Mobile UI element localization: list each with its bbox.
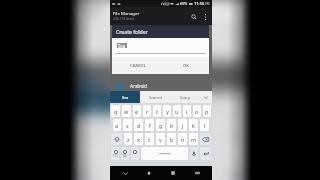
staticText: Scary <box>180 95 191 100</box>
button[interactable]: t <box>153 105 161 117</box>
button[interactable]: q <box>111 105 120 117</box>
button[interactable]: Android <box>70 74 251 90</box>
button[interactable]: p <box>203 105 211 117</box>
button[interactable]: Comma <box>131 147 139 160</box>
button[interactable]: More suggestions <box>231 92 251 113</box>
button[interactable]: j <box>178 119 187 131</box>
button[interactable]: z <box>124 133 132 145</box>
button[interactable]: More suggestions <box>200 91 212 103</box>
button[interactable]: y <box>163 105 171 117</box>
button[interactable]: OK <box>192 31 220 61</box>
staticText: CANCEL <box>105 41 134 52</box>
button[interactable]: j <box>192 142 208 164</box>
button[interactable]: v <box>156 133 165 145</box>
button[interactable]: i <box>201 117 215 139</box>
button[interactable]: Backspace <box>200 133 211 145</box>
staticText: l <box>238 148 242 160</box>
staticText: w <box>94 122 103 135</box>
button[interactable]: Search <box>187 8 200 25</box>
staticText: g <box>159 122 163 129</box>
button[interactable]: z <box>94 167 109 180</box>
button[interactable]: c <box>132 167 148 180</box>
button[interactable]: w <box>91 117 107 139</box>
button[interactable]: Backspace <box>231 167 251 180</box>
button[interactable]: Recent apps <box>164 166 182 180</box>
staticText: u <box>175 108 179 115</box>
button[interactable]: OK <box>178 57 194 74</box>
button[interactable]: Enter <box>200 147 211 160</box>
button[interactable]: Sca <box>70 92 123 113</box>
button[interactable]: q <box>71 117 87 139</box>
button[interactable]: a <box>75 142 89 164</box>
button[interactable]: w <box>122 105 131 117</box>
button[interactable]: x <box>112 167 129 180</box>
staticText: n <box>181 136 185 143</box>
button[interactable]: u <box>183 117 197 139</box>
button[interactable]: Symbols <box>111 147 119 160</box>
button[interactable]: l <box>231 142 247 164</box>
button[interactable]: m <box>211 167 228 180</box>
staticText: OK <box>183 63 189 69</box>
staticText: h <box>170 122 174 129</box>
button[interactable]: h <box>172 142 188 164</box>
button[interactable]: Screenshot <box>188 166 206 180</box>
staticText: Sca <box>122 95 129 100</box>
button[interactable]: d <box>134 119 143 131</box>
button[interactable]: y <box>165 117 179 139</box>
button[interactable]: o <box>219 117 233 139</box>
button[interactable]: h <box>167 119 176 131</box>
button[interactable]: Space <box>141 147 188 160</box>
button[interactable]: CANCEL <box>127 57 149 74</box>
button[interactable]: c <box>145 133 154 145</box>
staticText: r <box>134 122 139 135</box>
staticText: o <box>195 108 199 115</box>
button[interactable]: s <box>123 119 132 131</box>
button[interactable]: l <box>200 119 209 131</box>
button[interactable]: CANCEL <box>100 31 139 61</box>
button[interactable]: e <box>111 117 125 139</box>
button[interactable]: More options <box>200 8 210 25</box>
button[interactable]: r <box>129 117 143 139</box>
button[interactable]: p <box>237 117 251 139</box>
button[interactable]: d <box>112 142 129 164</box>
button[interactable]: n <box>178 133 187 145</box>
button[interactable]: Shift <box>111 133 122 145</box>
button[interactable]: Back <box>116 166 134 180</box>
button[interactable]: f <box>145 119 154 131</box>
button[interactable]: m <box>189 133 198 145</box>
button[interactable]: Language <box>121 147 129 160</box>
button[interactable]: a <box>113 119 121 131</box>
button[interactable]: r <box>143 105 151 117</box>
button[interactable]: x <box>134 133 143 145</box>
button[interactable]: f <box>132 142 148 164</box>
button[interactable]: b <box>167 133 176 145</box>
button[interactable]: Home <box>140 166 158 180</box>
button[interactable]: Scared <box>123 92 177 113</box>
button[interactable]: u <box>173 105 181 117</box>
button[interactable]: Shift <box>71 167 91 180</box>
button[interactable]: Android <box>110 81 212 90</box>
button[interactable]: g <box>152 142 168 164</box>
staticText: Create folder <box>116 28 148 35</box>
button[interactable]: t <box>147 117 161 139</box>
button[interactable]: g <box>156 119 165 131</box>
staticText: i <box>186 108 188 115</box>
button[interactable]: Scary <box>170 91 200 103</box>
button[interactable]: b <box>172 167 188 180</box>
button[interactable]: n <box>192 167 208 180</box>
button[interactable]: k <box>189 119 198 131</box>
staticText: PM <box>205 2 210 6</box>
button[interactable]: Sca <box>110 91 140 103</box>
button[interactable]: i <box>183 105 191 117</box>
button[interactable]: Scared <box>140 91 170 103</box>
button[interactable]: o <box>193 105 201 117</box>
staticText: r <box>146 108 149 115</box>
button[interactable]: Voice input <box>190 147 198 160</box>
button[interactable]: e <box>133 105 141 117</box>
button[interactable]: Scary <box>177 92 231 113</box>
